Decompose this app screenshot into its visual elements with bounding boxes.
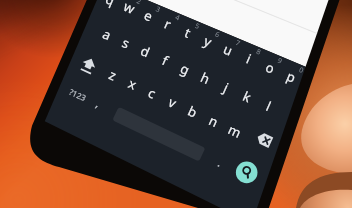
button[interactable] bbox=[0, 0, 352, 208]
